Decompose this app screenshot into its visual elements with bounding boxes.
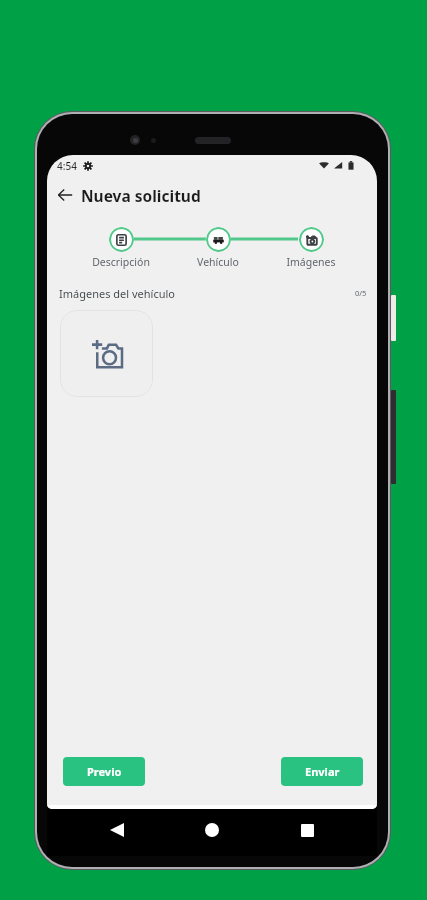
button[interactable]: Imágenes — [299, 227, 324, 252]
button[interactable]: Descripción — [109, 227, 134, 252]
staticText: 0/5 — [355, 288, 367, 298]
staticText: Imágenes — [286, 255, 336, 269]
staticText: Enviar — [305, 764, 340, 779]
button[interactable]: Recientes — [290, 813, 324, 847]
button[interactable]: Previo — [63, 757, 145, 786]
staticText: Vehículo — [197, 255, 239, 269]
button[interactable]: Vehículo — [206, 227, 231, 252]
button[interactable]: Atrás — [100, 813, 134, 847]
button[interactable]: Agregar imagen — [60, 310, 153, 397]
staticText: Descripción — [92, 255, 150, 269]
staticText: Nueva solicitud — [81, 185, 201, 206]
staticText: 4:54 — [57, 159, 77, 173]
button[interactable]: Atrás — [52, 182, 78, 208]
staticText: Previo — [87, 764, 122, 779]
staticText: Imágenes del vehículo — [59, 286, 175, 301]
button[interactable]: Inicio — [195, 813, 229, 847]
button[interactable]: Enviar — [281, 757, 363, 786]
